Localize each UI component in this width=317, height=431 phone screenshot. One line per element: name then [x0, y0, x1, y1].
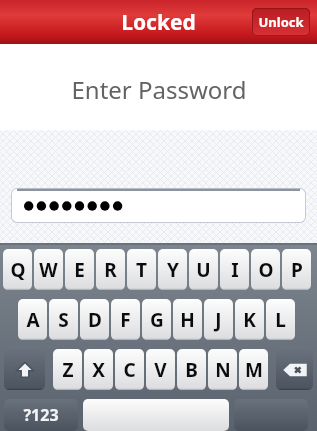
- staticText: P: [291, 257, 303, 283]
- staticText: F: [120, 307, 131, 333]
- button[interactable]: P: [282, 249, 311, 290]
- staticText: Enter Password: [71, 73, 247, 106]
- staticText: G: [150, 307, 164, 333]
- staticText: Q: [10, 257, 26, 283]
- button[interactable]: I: [220, 249, 249, 290]
- button[interactable]: Space: [83, 399, 229, 431]
- button[interactable]: W: [34, 249, 63, 290]
- staticText: V: [154, 357, 167, 383]
- button[interactable]: J: [204, 299, 233, 340]
- button[interactable]: N: [208, 349, 237, 390]
- button[interactable]: D: [80, 299, 109, 340]
- staticText: Z: [62, 357, 74, 383]
- button[interactable]: C: [115, 349, 144, 390]
- staticText: Y: [167, 257, 179, 283]
- staticText: D: [88, 307, 102, 333]
- button[interactable]: X: [84, 349, 113, 390]
- staticText: M: [245, 357, 263, 383]
- button[interactable]: B: [177, 349, 206, 390]
- staticText: X: [92, 357, 105, 383]
- staticText: ?123: [23, 404, 59, 426]
- staticText: I: [231, 257, 239, 283]
- staticText: K: [243, 307, 256, 333]
- staticText: E: [74, 257, 85, 283]
- button[interactable]: Q: [3, 249, 32, 290]
- button[interactable]: A: [18, 299, 47, 340]
- staticText: U: [196, 257, 211, 283]
- button[interactable]: H: [173, 299, 202, 340]
- button[interactable]: U: [189, 249, 218, 290]
- staticText: B: [185, 357, 198, 383]
- staticText: Unlock: [258, 13, 304, 31]
- button[interactable]: G: [142, 299, 171, 340]
- button[interactable]: Z: [53, 349, 82, 390]
- button[interactable]: Shift: [4, 349, 45, 390]
- staticText: J: [215, 307, 222, 333]
- staticText: Locked: [121, 8, 196, 37]
- staticText: O: [258, 257, 274, 283]
- button[interactable]: K: [235, 299, 264, 340]
- button[interactable]: M: [239, 349, 268, 390]
- button[interactable]: Return: [234, 399, 308, 431]
- staticText: T: [136, 257, 147, 283]
- staticText: A: [26, 307, 40, 333]
- button[interactable]: R: [96, 249, 125, 290]
- button[interactable]: ?123: [4, 399, 78, 431]
- staticText: L: [275, 307, 286, 333]
- button[interactable]: F: [111, 299, 140, 340]
- button[interactable]: S: [49, 299, 78, 340]
- staticText: R: [104, 257, 117, 283]
- button[interactable]: T: [127, 249, 156, 290]
- button[interactable]: L: [266, 299, 295, 340]
- button[interactable]: Unlock: [252, 8, 310, 36]
- button[interactable]: Y: [158, 249, 187, 290]
- button[interactable]: V: [146, 349, 175, 390]
- button[interactable]: Backspace: [276, 349, 313, 390]
- button[interactable]: O: [251, 249, 280, 290]
- staticText: W: [39, 257, 58, 283]
- staticText: C: [123, 357, 136, 383]
- staticText: N: [215, 357, 231, 383]
- button[interactable]: Password field: [11, 188, 306, 223]
- button[interactable]: E: [65, 249, 94, 290]
- staticText: S: [58, 307, 69, 333]
- staticText: H: [180, 307, 195, 333]
